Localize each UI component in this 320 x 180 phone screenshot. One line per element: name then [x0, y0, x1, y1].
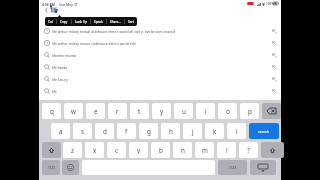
staticText: m	[202, 146, 208, 155]
staticText: z	[71, 146, 74, 155]
button[interactable]: life arthur mckay rescue clubhouse elmo'…	[39, 37, 281, 49]
button[interactable]: y	[152, 103, 171, 119]
button[interactable]: life hanks	[39, 61, 281, 73]
staticText: e	[94, 107, 98, 116]
staticText: Look Up	[75, 20, 87, 24]
staticText: Copy	[60, 20, 68, 24]
button[interactable]: s	[73, 123, 92, 139]
button[interactable]: k	[205, 123, 224, 139]
button[interactable]: Cut	[45, 17, 56, 26]
button[interactable]: w	[64, 103, 83, 119]
staticText: Cut	[48, 20, 53, 24]
staticText: w	[71, 107, 76, 116]
staticText: g	[147, 127, 151, 136]
button[interactable]: Copy	[57, 17, 71, 26]
button[interactable]: h	[161, 123, 180, 139]
button[interactable]: d	[95, 123, 114, 139]
staticText: lifetime movies	[52, 53, 77, 58]
button[interactable]: !	[217, 142, 236, 158]
button[interactable]: Emoji	[62, 160, 79, 175]
button[interactable]: Backspace	[262, 103, 281, 119]
staticText: u	[182, 107, 186, 116]
button[interactable]: g	[139, 123, 158, 139]
button[interactable]: q	[42, 103, 61, 119]
button[interactable]: ?	[239, 142, 258, 158]
staticText: x	[93, 146, 97, 155]
staticText: 4:58 PM	[42, 2, 55, 7]
staticText: f	[125, 127, 128, 136]
staticText: t	[138, 107, 141, 116]
staticText: n	[181, 146, 185, 155]
staticText: b	[159, 146, 163, 155]
button[interactable]: o	[218, 103, 237, 119]
button[interactable]: Look Up	[72, 17, 90, 26]
button[interactable]: u	[174, 103, 193, 119]
staticText: life arthur mckay revival clubhouse elmo…	[52, 29, 175, 34]
staticText: q	[50, 107, 54, 116]
staticText: 100%	[266, 2, 274, 6]
button[interactable]: c	[107, 142, 126, 158]
staticText: life	[52, 89, 57, 94]
staticText: ?	[247, 146, 250, 155]
button[interactable]: life arthur mckay revival clubhouse elmo…	[39, 25, 281, 37]
staticText: life hanks	[52, 65, 68, 70]
staticText: d	[103, 127, 107, 136]
staticText: search	[258, 129, 270, 134]
staticText: Share...	[110, 20, 121, 24]
staticText: life luxury	[52, 77, 68, 82]
staticText: life	[51, 7, 59, 14]
button[interactable]: f	[117, 123, 136, 139]
button[interactable]: lifetime movies	[39, 49, 281, 61]
staticText: Sort	[128, 20, 134, 24]
staticText: y	[160, 107, 164, 116]
button[interactable]: Hide keyboard	[250, 160, 276, 175]
button[interactable]: i	[196, 103, 215, 119]
staticText: Speak	[94, 20, 103, 24]
button[interactable]: a	[51, 123, 70, 139]
button[interactable]: t	[130, 103, 149, 119]
button[interactable]: v	[129, 142, 148, 158]
button[interactable]: .?123	[218, 160, 247, 175]
button[interactable]: e	[86, 103, 105, 119]
button[interactable]: z	[63, 142, 82, 158]
button[interactable]: n	[173, 142, 192, 158]
staticText: o	[226, 107, 230, 116]
button[interactable]: Speak	[91, 17, 106, 26]
staticText: r	[116, 107, 119, 116]
button[interactable]: Shift	[42, 142, 61, 158]
button[interactable]: r	[108, 103, 127, 119]
staticText: life arthur mckay rescue clubhouse elmo'…	[52, 41, 136, 46]
button[interactable]: Sort	[125, 17, 137, 26]
staticText: s	[81, 127, 85, 136]
button[interactable]: Share...	[107, 17, 124, 26]
staticText: v	[137, 146, 141, 155]
button[interactable]: .?123	[42, 160, 60, 175]
button[interactable]: Back	[42, 6, 50, 14]
staticText: l	[236, 127, 238, 136]
button[interactable]: l	[227, 123, 246, 139]
button[interactable]: p	[240, 103, 259, 119]
button[interactable]: life	[39, 85, 281, 97]
staticText: i	[205, 107, 207, 116]
staticText: j	[192, 127, 194, 136]
staticText: .?123	[47, 165, 56, 170]
staticText: a	[59, 127, 63, 136]
button[interactable]: j	[183, 123, 202, 139]
staticText: p	[248, 107, 252, 116]
button[interactable]: Shift	[261, 142, 284, 158]
button[interactable]: x	[85, 142, 104, 158]
staticText: !	[226, 146, 228, 155]
staticText: Sun May 31	[59, 2, 78, 7]
button[interactable]: search	[249, 123, 279, 139]
staticText: h	[169, 127, 173, 136]
button[interactable]: life luxury	[39, 73, 281, 85]
staticText: k	[213, 127, 217, 136]
staticText: c	[115, 146, 119, 155]
staticText: .?123	[228, 165, 237, 170]
button[interactable]: b	[151, 142, 170, 158]
button[interactable]: m	[195, 142, 214, 158]
